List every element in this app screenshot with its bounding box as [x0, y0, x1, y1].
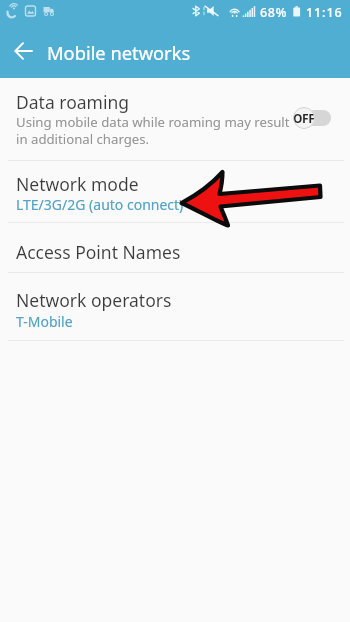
staticText: Network operators: [16, 288, 172, 312]
staticText: Mobile networks: [47, 40, 191, 65]
button[interactable]: Data roaming: [0, 80, 350, 160]
button[interactable]: Back: [8, 35, 40, 67]
staticText: Using mobile data while roaming may resu…: [16, 113, 290, 148]
staticText: Network mode: [16, 172, 139, 196]
button[interactable]: Data roaming off: [293, 107, 331, 129]
staticText: 68%: [260, 4, 288, 21]
staticText: Data roaming: [16, 90, 130, 114]
staticText: OFF: [293, 110, 315, 126]
staticText: T-Mobile: [16, 312, 73, 331]
staticText: Access Point Names: [16, 240, 181, 264]
button[interactable]: Network operators: [0, 273, 350, 340]
button[interactable]: Access Point Names: [0, 223, 350, 272]
staticText: 11:16: [306, 4, 343, 21]
staticText: LTE/3G/2G (auto connect): [16, 195, 184, 214]
button[interactable]: Network mode: [0, 161, 350, 222]
